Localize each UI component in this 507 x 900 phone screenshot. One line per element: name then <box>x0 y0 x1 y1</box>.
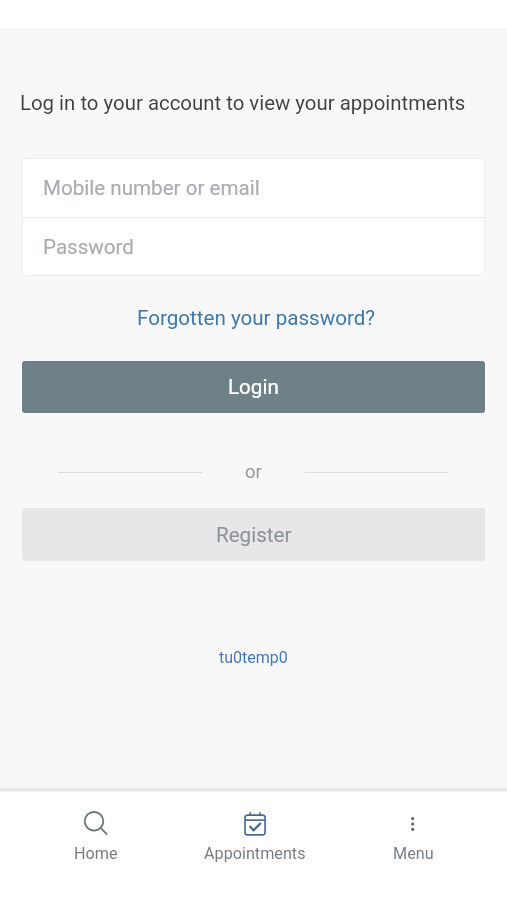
staticText: Menu <box>393 844 434 863</box>
staticText: Mobile number or email <box>43 176 260 200</box>
staticText: tu0temp0 <box>219 648 288 667</box>
button[interactable]: Password <box>22 218 485 276</box>
button[interactable]: tu0temp0 <box>211 644 296 671</box>
button[interactable]: Appointments <box>175 792 334 863</box>
other: Home <box>83 811 109 837</box>
staticText: Password <box>43 235 134 259</box>
staticText: Login <box>228 375 279 399</box>
button[interactable]: Register <box>22 508 485 561</box>
staticText: Register <box>216 523 292 547</box>
button[interactable]: Mobile number or email <box>22 158 485 217</box>
other: Menu <box>401 811 427 837</box>
staticText: or <box>245 461 262 483</box>
staticText: Appointments <box>204 844 306 863</box>
button[interactable]: Home <box>16 792 175 863</box>
staticText: Forgotten your password? <box>137 306 376 330</box>
button[interactable]: Menu <box>334 792 493 863</box>
button[interactable]: Forgotten your password? <box>129 302 384 334</box>
other: Appointments <box>242 811 268 837</box>
staticText: Log in to your account to view your appo… <box>20 91 466 115</box>
button[interactable]: Login <box>22 361 485 413</box>
staticText: Home <box>74 844 118 863</box>
